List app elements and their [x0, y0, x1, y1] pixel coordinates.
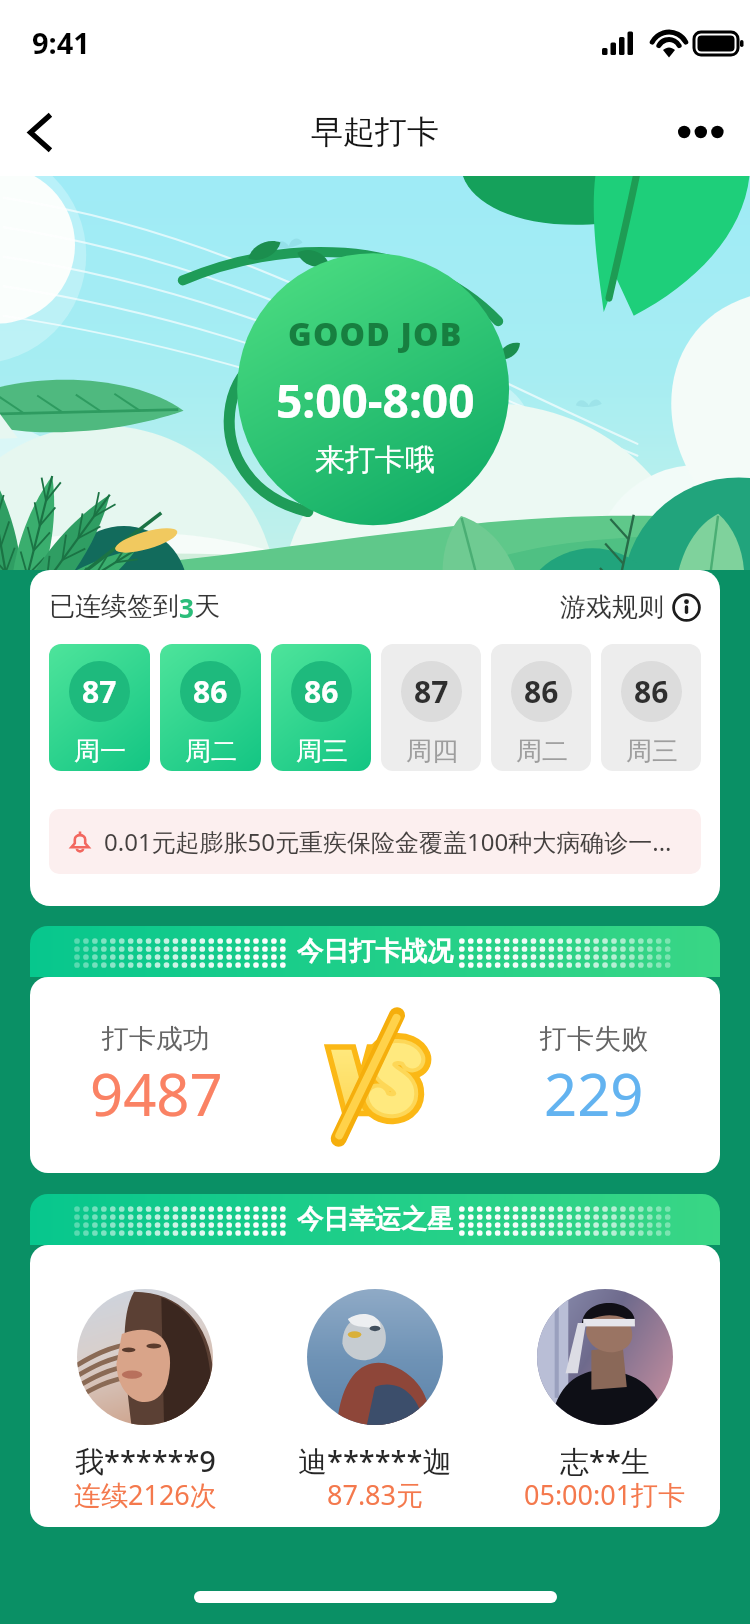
- staticText: 周二: [516, 735, 568, 768]
- button[interactable]: 打卡成功: [30, 1022, 282, 1135]
- staticText: 86: [524, 671, 559, 712]
- staticText: 9487: [90, 1054, 223, 1133]
- button[interactable]: 志**生: [490, 1289, 720, 1518]
- button[interactable]: 86: [271, 644, 371, 771]
- staticText: 05:00:01打卡: [524, 1476, 686, 1513]
- staticText: 3: [179, 590, 194, 625]
- staticText: GOOD JOB: [288, 312, 463, 356]
- staticText: 周三: [296, 735, 348, 768]
- staticText: 周四: [406, 735, 458, 768]
- button[interactable]: 86: [160, 644, 261, 771]
- button[interactable]: 0.01元起膨胀50元重疾保险金覆盖100种大病确诊一...: [49, 809, 701, 874]
- button[interactable]: 打卡失败: [468, 1022, 720, 1135]
- staticText: 周一: [74, 735, 126, 768]
- staticText: 229: [544, 1054, 644, 1133]
- staticText: 游戏规则: [560, 591, 664, 624]
- staticText: 我******9: [75, 1441, 216, 1481]
- staticText: 87.83元: [327, 1476, 424, 1513]
- button[interactable]: 87: [381, 644, 481, 771]
- staticText: 连续2126次: [74, 1476, 217, 1513]
- staticText: 86: [193, 671, 228, 712]
- button[interactable]: More options: [652, 88, 750, 176]
- staticText: 迪******迦: [298, 1441, 452, 1481]
- staticText: 5:00-8:00: [276, 369, 475, 432]
- staticText: 志**生: [560, 1441, 650, 1481]
- button[interactable]: 我******9: [30, 1289, 260, 1518]
- staticText: 周三: [626, 735, 678, 768]
- staticText: 天: [194, 590, 220, 623]
- button[interactable]: Back: [0, 88, 79, 176]
- staticText: 86: [634, 671, 669, 712]
- staticText: 87: [414, 671, 449, 712]
- staticText: 已连续签到: [49, 590, 179, 623]
- staticText: 9:41: [32, 23, 90, 62]
- staticText: 打卡成功: [102, 1022, 210, 1056]
- button[interactable]: 86: [601, 644, 701, 771]
- button[interactable]: 86: [491, 644, 591, 771]
- staticText: 今日幸运之星: [297, 1203, 453, 1236]
- button[interactable]: 迪******迦: [260, 1289, 490, 1518]
- staticText: 周二: [185, 735, 237, 768]
- staticText: 来打卡哦: [315, 441, 435, 479]
- staticText: 今日打卡战况: [297, 935, 453, 968]
- button[interactable]: 87: [49, 644, 150, 771]
- button[interactable]: 游戏规则: [560, 591, 701, 624]
- staticText: 早起打卡: [311, 112, 439, 152]
- staticText: 打卡失败: [540, 1022, 648, 1056]
- staticText: 0.01元起膨胀50元重疾保险金覆盖100种大病确诊一...: [104, 825, 672, 858]
- staticText: 86: [304, 671, 339, 712]
- staticText: 87: [82, 671, 117, 712]
